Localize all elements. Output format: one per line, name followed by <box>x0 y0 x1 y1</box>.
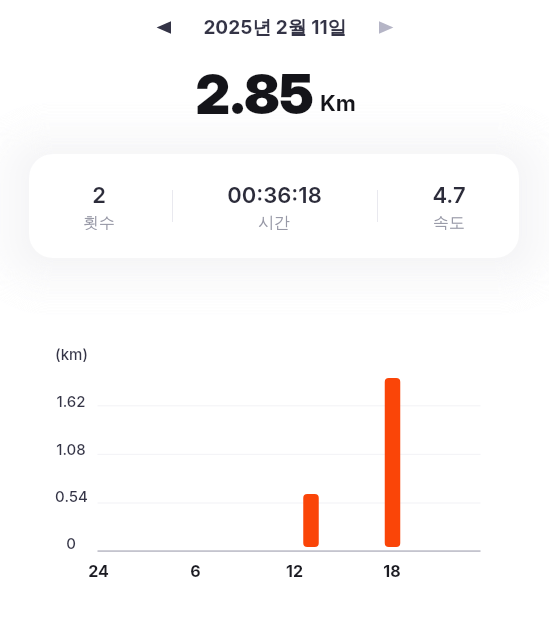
staticText: 시간 <box>258 213 290 233</box>
staticText: Km <box>320 90 356 117</box>
button[interactable]: 4.7 <box>379 176 519 242</box>
staticText: 12 <box>286 561 303 580</box>
staticText: 4.7 <box>432 182 466 209</box>
staticText: 1.62 <box>56 392 86 410</box>
button[interactable]: Next day <box>368 10 402 44</box>
staticText: 2 <box>92 182 106 209</box>
button[interactable]: 2 <box>29 176 169 242</box>
button[interactable]: Previous day <box>147 10 181 44</box>
staticText: 24 <box>88 561 109 580</box>
staticText: 속도 <box>433 213 465 233</box>
staticText: 2.85 <box>195 61 314 128</box>
staticText: 6 <box>190 561 201 580</box>
staticText: 0.54 <box>55 487 88 505</box>
staticText: 00:36:18 <box>227 182 322 209</box>
staticText: 0 <box>66 534 76 552</box>
staticText: 횟수 <box>83 213 115 233</box>
staticText: 1.08 <box>56 440 86 458</box>
staticText: (km) <box>55 345 88 363</box>
staticText: 18 <box>383 561 401 580</box>
button[interactable]: 00:36:18 <box>204 176 344 242</box>
staticText: 2025년 2월 11일 <box>203 16 347 40</box>
